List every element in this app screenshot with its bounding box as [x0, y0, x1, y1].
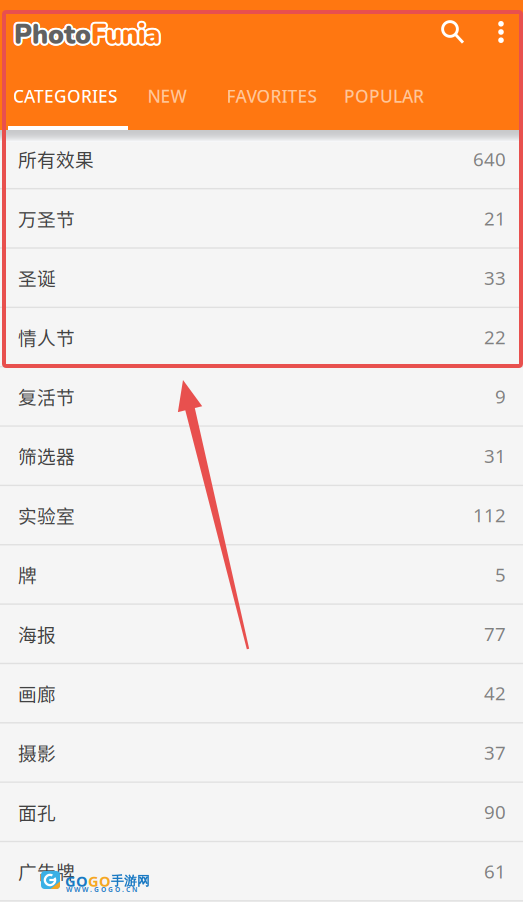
staticText: Funia — [93, 18, 162, 54]
button[interactable]: Search — [431, 7, 479, 63]
staticText: 22 — [484, 325, 506, 349]
staticText: Funia — [93, 17, 162, 53]
staticText: Photo — [16, 18, 93, 54]
staticText: Photo — [14, 17, 91, 53]
staticText: Funia — [92, 18, 161, 55]
staticText: 复活节 — [18, 383, 75, 410]
button[interactable]: 复活节 — [0, 367, 523, 427]
staticText: Funia — [89, 16, 158, 52]
staticText: Funia — [91, 17, 160, 53]
staticText: 实验室 — [18, 502, 75, 529]
staticText: Photo — [12, 18, 89, 54]
button[interactable]: 海报 — [0, 605, 523, 664]
staticText: GO — [88, 871, 111, 891]
button[interactable]: 圣诞 — [0, 249, 523, 308]
staticText: 摄影 — [18, 739, 56, 766]
staticText: Photo — [12, 16, 89, 52]
button[interactable]: FAVORITES — [203, 65, 341, 127]
staticText: 所有效果 — [18, 145, 94, 172]
button[interactable]: 牌 — [0, 545, 523, 605]
button[interactable]: 筛选器 — [0, 427, 523, 486]
staticText: 112 — [473, 503, 506, 527]
staticText: Funia — [91, 15, 160, 51]
button[interactable]: 摄影 — [0, 723, 523, 783]
button[interactable]: 面孔 — [0, 783, 523, 842]
staticText: 广告牌 — [18, 858, 75, 885]
button[interactable]: 实验室 — [0, 486, 523, 545]
button[interactable]: 广告牌 — [0, 842, 523, 902]
staticText: Photo — [15, 18, 92, 55]
button[interactable]: More options — [479, 7, 523, 63]
button[interactable]: 万圣节 — [0, 189, 523, 249]
staticText: 牌 — [18, 561, 37, 588]
staticText: 情人节 — [18, 323, 75, 350]
staticText: 21 — [484, 206, 506, 231]
button[interactable]: NEW — [131, 65, 203, 127]
staticText: Funia — [91, 19, 160, 55]
staticText: 42 — [484, 681, 506, 705]
staticText: 9 — [495, 384, 506, 409]
button[interactable]: POPULAR — [341, 65, 427, 127]
staticText: Photo — [13, 15, 90, 51]
staticText: Photo — [14, 15, 91, 51]
staticText: 77 — [484, 621, 506, 646]
staticText: 5 — [495, 562, 506, 587]
staticText: 手游网 — [111, 873, 150, 889]
staticText: 33 — [484, 265, 506, 290]
staticText: GO — [65, 871, 88, 891]
staticText: Funia — [92, 15, 161, 51]
staticText: 画廊 — [18, 680, 56, 707]
staticText: NEW — [147, 84, 186, 107]
staticText: 面孔 — [18, 798, 56, 825]
button[interactable]: 所有效果 — [0, 130, 523, 189]
staticText: POPULAR — [344, 84, 424, 107]
staticText: Photo — [16, 17, 93, 53]
staticText: 90 — [484, 799, 506, 824]
staticText: Photo — [16, 16, 93, 52]
staticText: Funia — [90, 15, 159, 51]
staticText: W W W . G O G O . C N — [66, 885, 137, 894]
staticText: Photo — [15, 15, 92, 51]
staticText: Photo — [14, 19, 91, 55]
staticText: 61 — [484, 859, 506, 884]
staticText: CATEGORIES — [13, 84, 118, 107]
staticText: Funia — [90, 18, 159, 55]
button[interactable]: CATEGORIES — [0, 65, 131, 127]
staticText: 37 — [484, 740, 506, 765]
staticText: FAVORITES — [226, 84, 317, 107]
staticText: Photo — [12, 17, 89, 53]
staticText: 海报 — [18, 620, 56, 647]
staticText: Funia — [89, 17, 158, 53]
staticText: 筛选器 — [18, 442, 75, 469]
button[interactable]: 画廊 — [0, 664, 523, 724]
button[interactable]: 情人节 — [0, 308, 523, 367]
staticText: 万圣节 — [18, 205, 75, 232]
staticText: 圣诞 — [18, 264, 56, 291]
staticText: 31 — [484, 443, 506, 468]
staticText: 640 — [473, 147, 506, 171]
staticText: Photo — [13, 18, 90, 55]
staticText: Funia — [89, 18, 158, 54]
staticText: Funia — [93, 16, 162, 52]
